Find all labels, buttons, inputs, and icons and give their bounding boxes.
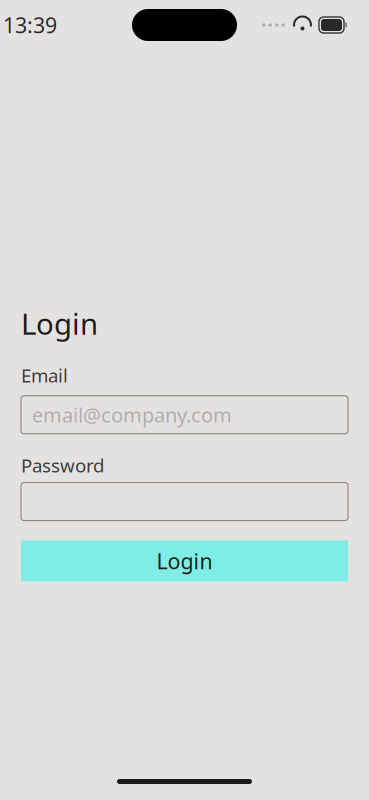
staticText: Password: [21, 453, 104, 477]
staticText: Email: [21, 363, 68, 388]
staticText: Login: [156, 547, 212, 575]
staticText: email@company.com: [32, 401, 232, 428]
button[interactable]: Password field: [21, 482, 348, 520]
button[interactable]: Login: [21, 540, 348, 581]
staticText: 13:39: [3, 11, 57, 39]
button[interactable]: Email field: [21, 396, 348, 434]
staticText: Login: [21, 304, 98, 343]
